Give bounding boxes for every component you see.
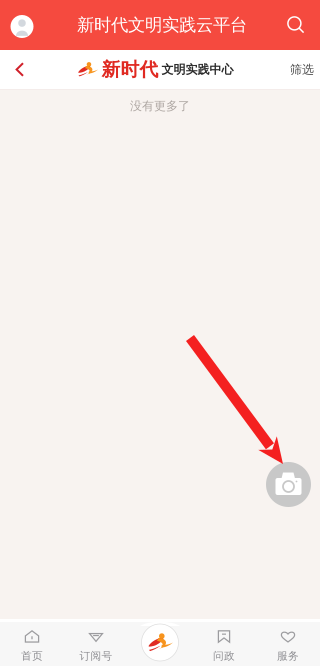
staticText: 首页: [21, 649, 43, 662]
button[interactable]: 订阅号: [64, 620, 128, 666]
staticText: 订阅号: [79, 649, 112, 662]
staticText: 服务: [277, 649, 299, 662]
button[interactable]: 新时代: [141, 624, 178, 661]
button[interactable]: 问政: [192, 620, 256, 666]
button[interactable]: Camera: [266, 462, 311, 507]
staticText: 新时代文明实践云平台: [77, 14, 247, 36]
staticText: 筛选: [290, 62, 314, 77]
staticText: 文明实践中心: [161, 62, 233, 77]
staticText: 没有更多了: [130, 99, 190, 113]
button[interactable]: Back: [0, 50, 40, 89]
button[interactable]: Search: [280, 0, 312, 50]
button[interactable]: 首页: [0, 620, 64, 666]
button[interactable]: 筛选: [284, 50, 320, 89]
button[interactable]: 服务: [256, 620, 320, 666]
button[interactable]: Profile: [0, 0, 44, 50]
staticText: 新时代: [101, 58, 158, 81]
staticText: 问政: [213, 649, 235, 662]
